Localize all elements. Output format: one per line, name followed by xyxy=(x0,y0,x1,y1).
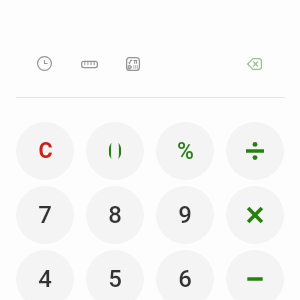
button[interactable]: 9 xyxy=(156,186,214,244)
button[interactable] xyxy=(86,122,144,180)
staticText: 7 xyxy=(38,201,52,229)
staticText: C xyxy=(38,138,53,163)
staticText: 4 xyxy=(38,265,52,293)
button[interactable] xyxy=(226,186,284,244)
button[interactable]: 5 xyxy=(86,250,144,300)
staticText: % xyxy=(177,138,194,165)
staticText: 5 xyxy=(108,265,122,293)
button[interactable]: Unit converter xyxy=(81,57,98,72)
button[interactable] xyxy=(226,250,284,300)
button[interactable] xyxy=(226,122,284,180)
button[interactable]: Scientific calculator xyxy=(126,57,140,71)
staticText: 6 xyxy=(178,265,192,293)
button[interactable]: C xyxy=(16,122,74,180)
button[interactable]: % xyxy=(156,122,214,180)
staticText: 8 xyxy=(108,201,122,229)
button[interactable]: 6 xyxy=(156,250,214,300)
staticText: 9 xyxy=(178,201,192,229)
button[interactable]: 4 xyxy=(16,250,74,300)
button[interactable]: Backspace xyxy=(247,57,262,71)
button[interactable]: 7 xyxy=(16,186,74,244)
button[interactable]: 8 xyxy=(86,186,144,244)
button[interactable]: History xyxy=(37,56,52,71)
